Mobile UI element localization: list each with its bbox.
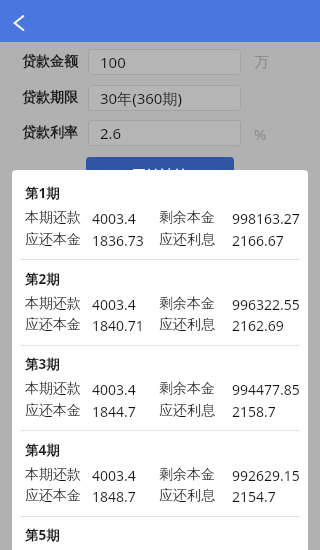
staticText: 剩余本金 <box>159 209 215 227</box>
staticText: 贷款利率 <box>22 124 78 142</box>
staticText: 剩余本金 <box>159 466 215 484</box>
button[interactable]: Back <box>0 2 38 40</box>
staticText: 应还本金 <box>25 231 81 249</box>
staticText: 剩余本金 <box>159 380 215 398</box>
staticText: 4003.4 <box>92 295 136 314</box>
staticText: 4003.4 <box>92 380 136 399</box>
staticText: 贷款金额 <box>22 53 78 71</box>
staticText: 本期还款 <box>25 295 81 313</box>
staticText: 4003.4 <box>92 209 136 228</box>
button[interactable]: 100 <box>88 49 241 75</box>
staticText: 应还利息 <box>159 316 215 334</box>
staticText: 994477.85 <box>232 380 300 399</box>
staticText: 应还利息 <box>159 402 215 420</box>
staticText: 4003.4 <box>92 466 136 485</box>
staticText: 998163.27 <box>232 209 300 228</box>
staticText: 30年(360期) <box>100 88 182 108</box>
staticText: 剩余本金 <box>159 295 215 313</box>
staticText: 应还本金 <box>25 316 81 334</box>
staticText: 1848.7 <box>92 487 136 506</box>
staticText: 贷款期限 <box>22 89 78 107</box>
staticText: 应还利息 <box>159 487 215 505</box>
staticText: 第3期 <box>25 355 60 373</box>
staticText: 100 <box>100 52 126 72</box>
staticText: 2166.67 <box>232 231 284 250</box>
button[interactable]: 开始计算 <box>86 157 234 195</box>
button[interactable]: 2.6 <box>88 120 241 146</box>
staticText: 1840.71 <box>92 316 144 335</box>
staticText: 本期还款 <box>25 466 81 484</box>
button[interactable]: 30年(360期) <box>88 85 241 111</box>
staticText: 第4期 <box>25 441 60 459</box>
staticText: 1836.73 <box>92 231 144 250</box>
staticText: 第5期 <box>25 526 60 544</box>
staticText: 第1期 <box>25 184 60 202</box>
staticText: 万 <box>254 53 269 72</box>
staticText: 992629.15 <box>232 466 300 485</box>
staticText: 应还本金 <box>25 402 81 420</box>
staticText: 2.6 <box>100 123 122 143</box>
staticText: 2158.7 <box>232 402 276 421</box>
staticText: 2154.7 <box>232 487 276 506</box>
staticText: 第2期 <box>25 270 60 288</box>
staticText: 应还利息 <box>159 231 215 249</box>
staticText: 本期还款 <box>25 209 81 227</box>
staticText: 996322.55 <box>232 295 300 314</box>
staticText: 开始计算 <box>132 167 188 185</box>
staticText: 1844.7 <box>92 402 136 421</box>
staticText: 应还本金 <box>25 487 81 505</box>
staticText: % <box>254 124 267 144</box>
staticText: 本期还款 <box>25 380 81 398</box>
staticText: 2162.69 <box>232 316 284 335</box>
